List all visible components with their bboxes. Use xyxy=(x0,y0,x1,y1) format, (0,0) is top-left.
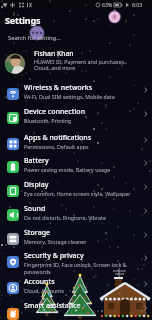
staticText: Power saving mode, Battery usage xyxy=(24,166,111,173)
button[interactable]: Security & privacy xyxy=(0,251,152,274)
staticText: Wireless & networks xyxy=(24,83,93,93)
button[interactable]: Fishan Khan xyxy=(0,49,152,80)
button[interactable]: Search for setting... xyxy=(0,32,152,45)
staticText: Security & privacy xyxy=(24,251,84,261)
button[interactable]: Sound xyxy=(0,204,152,227)
staticText: Battery xyxy=(24,156,49,166)
staticText: Eye comfort, Home screen style, Wallpape… xyxy=(24,190,131,197)
button[interactable]: Smart assistance xyxy=(0,301,152,320)
staticText: Display xyxy=(24,180,49,190)
staticText: Settings xyxy=(5,14,41,26)
staticText: Cloud, Accounts xyxy=(24,287,64,294)
button[interactable]: Battery xyxy=(0,156,152,179)
staticText: Fishan Khan xyxy=(34,49,74,58)
button[interactable]: Apps & notifications xyxy=(0,133,152,156)
staticText: HUAWEI ID, Payment and purchases, xyxy=(34,58,126,65)
staticText: Memory, Storage cleaner xyxy=(24,238,87,245)
staticText: Fingerprint ID, Face unlock, Screen lock… xyxy=(24,261,127,268)
staticText: 63% xyxy=(102,1,113,8)
staticText: Bluetooth, Printing xyxy=(24,117,72,124)
staticText: Apps & notifications xyxy=(24,133,92,143)
staticText: Search for setting... xyxy=(8,34,61,42)
button[interactable]: Device connection xyxy=(0,107,152,130)
staticText: Accounts xyxy=(24,277,55,287)
staticText: Do not disturb, Ringtone, Vibrate xyxy=(24,214,106,221)
staticText: Device connection xyxy=(24,107,86,117)
staticText: Storage xyxy=(24,228,50,238)
staticText: Smart assistance xyxy=(24,301,81,311)
staticText: Cloud, and more xyxy=(34,64,76,71)
staticText: Sound xyxy=(24,204,46,214)
staticText: passwords xyxy=(24,268,51,275)
staticText: Wi-Fi, Dual SIM settings, Mobile data xyxy=(24,93,115,100)
button[interactable]: Storage xyxy=(0,228,152,251)
staticText: Permissions, Default apps xyxy=(24,143,89,150)
button[interactable]: Accounts xyxy=(0,277,152,300)
staticText: 6:03 xyxy=(132,1,143,8)
button[interactable]: Wireless & networks xyxy=(0,83,152,106)
button[interactable]: Display xyxy=(0,180,152,203)
